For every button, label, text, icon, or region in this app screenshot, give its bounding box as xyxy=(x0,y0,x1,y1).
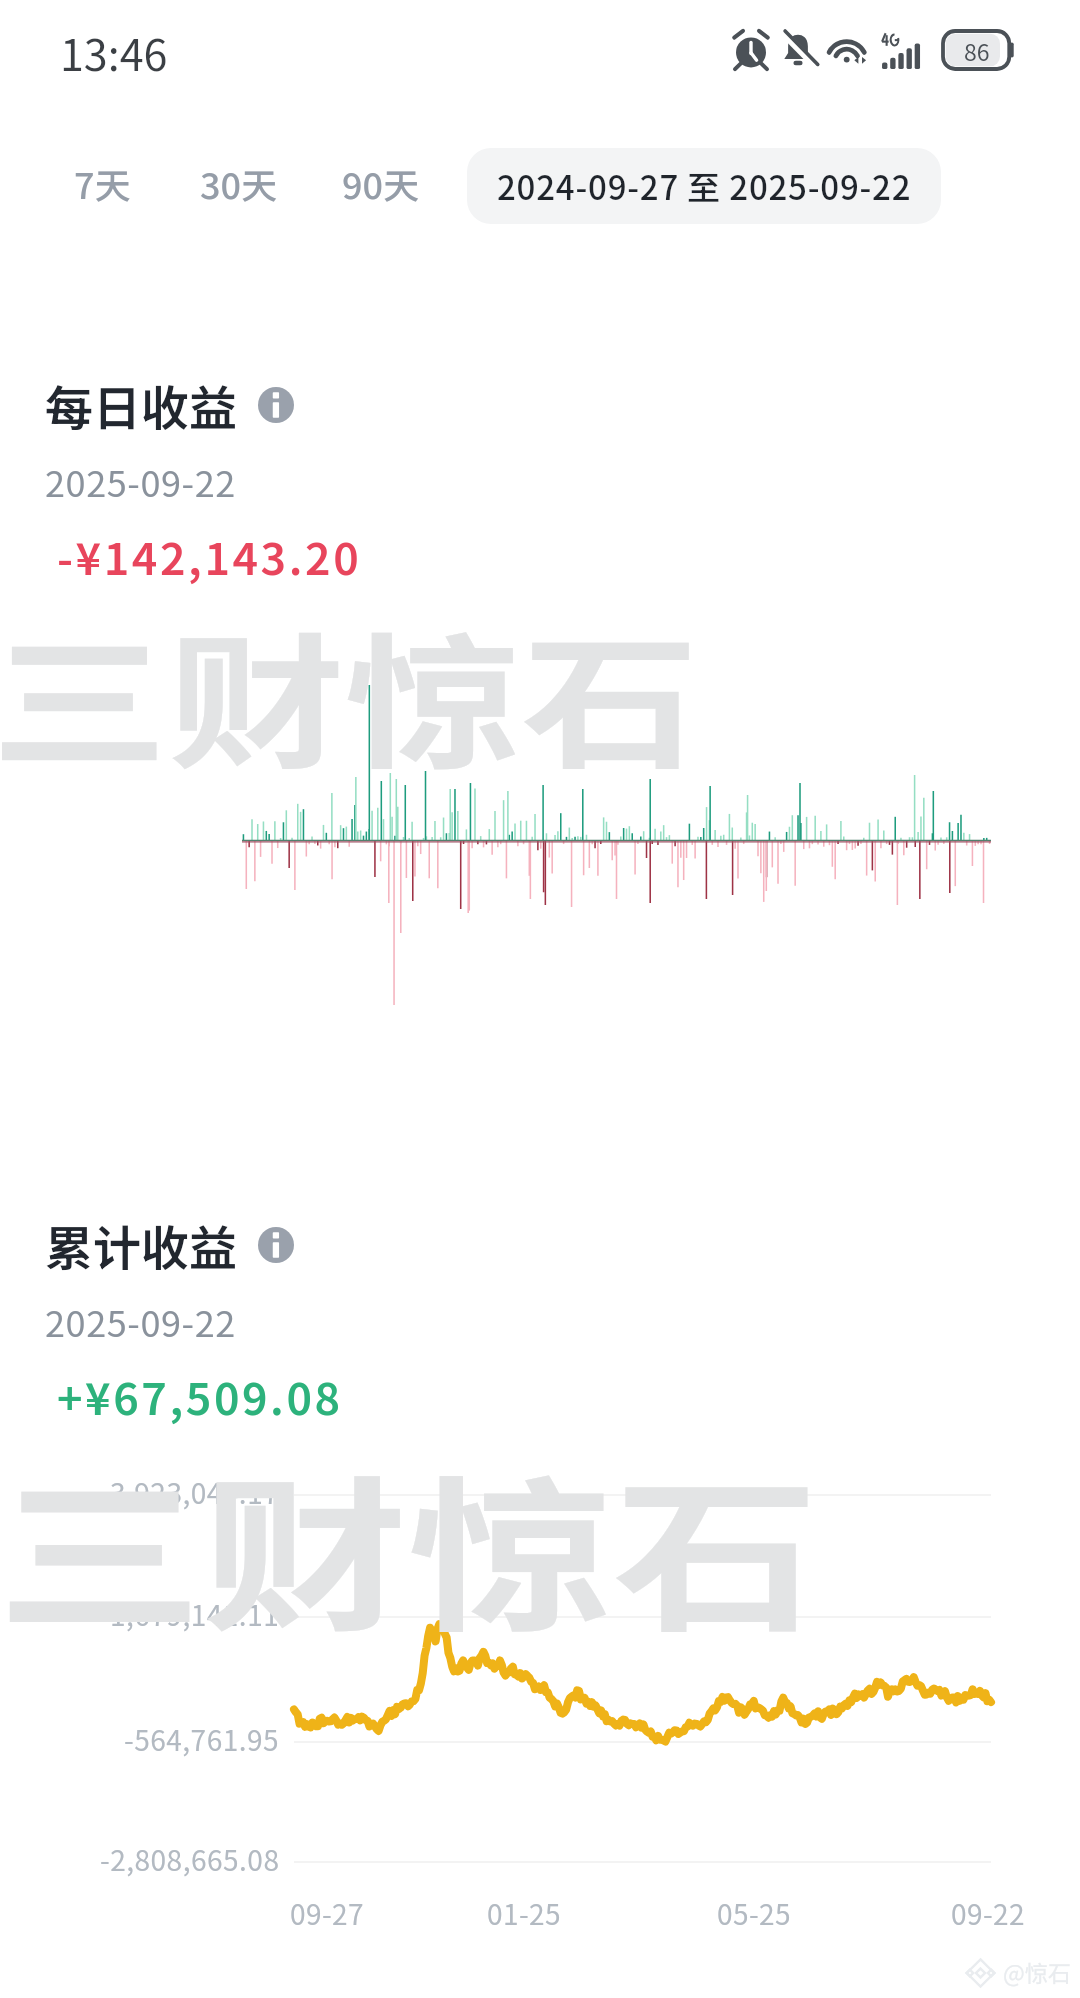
staticText: 7天 xyxy=(74,157,131,209)
staticText: 13:46 xyxy=(60,21,168,83)
staticText: 每日收益 xyxy=(45,370,238,440)
staticText: +¥67,509.08 xyxy=(57,1364,343,1428)
staticText: 01-25 xyxy=(487,1893,561,1934)
button[interactable]: 2024-09-27 至 2025-09-22 xyxy=(467,148,941,224)
staticText: 三财惊石 xyxy=(0,588,699,798)
button[interactable]: Info xyxy=(258,387,294,423)
staticText: 累计收益 xyxy=(45,1210,238,1280)
button[interactable]: 30天 xyxy=(200,157,278,209)
staticText: 09-27 xyxy=(290,1893,364,1934)
staticText: -564,761.95 xyxy=(124,1719,280,1760)
staticText: @惊石 xyxy=(1003,1955,1071,1988)
button[interactable]: 7天 xyxy=(74,157,131,209)
staticText: 三财惊石 xyxy=(0,1424,819,1664)
staticText: 86 xyxy=(964,34,990,67)
staticText: 2025-09-22 xyxy=(45,455,236,507)
staticText: 2024-09-27 至 2025-09-22 xyxy=(497,162,912,210)
staticText: 09-22 xyxy=(951,1893,1025,1934)
staticText: 30天 xyxy=(200,157,278,209)
staticText: -2,808,665.08 xyxy=(100,1839,280,1880)
staticText: -¥142,143.20 xyxy=(57,524,362,588)
button[interactable]: Info xyxy=(258,1227,294,1263)
staticText: 3,923,044.17 xyxy=(110,1472,280,1513)
button[interactable]: 90天 xyxy=(342,157,420,209)
staticText: 2025-09-22 xyxy=(45,1295,236,1347)
staticText: 90天 xyxy=(342,157,420,209)
staticText: 05-25 xyxy=(717,1893,791,1934)
staticText: 1,679,141.11 xyxy=(110,1594,280,1635)
